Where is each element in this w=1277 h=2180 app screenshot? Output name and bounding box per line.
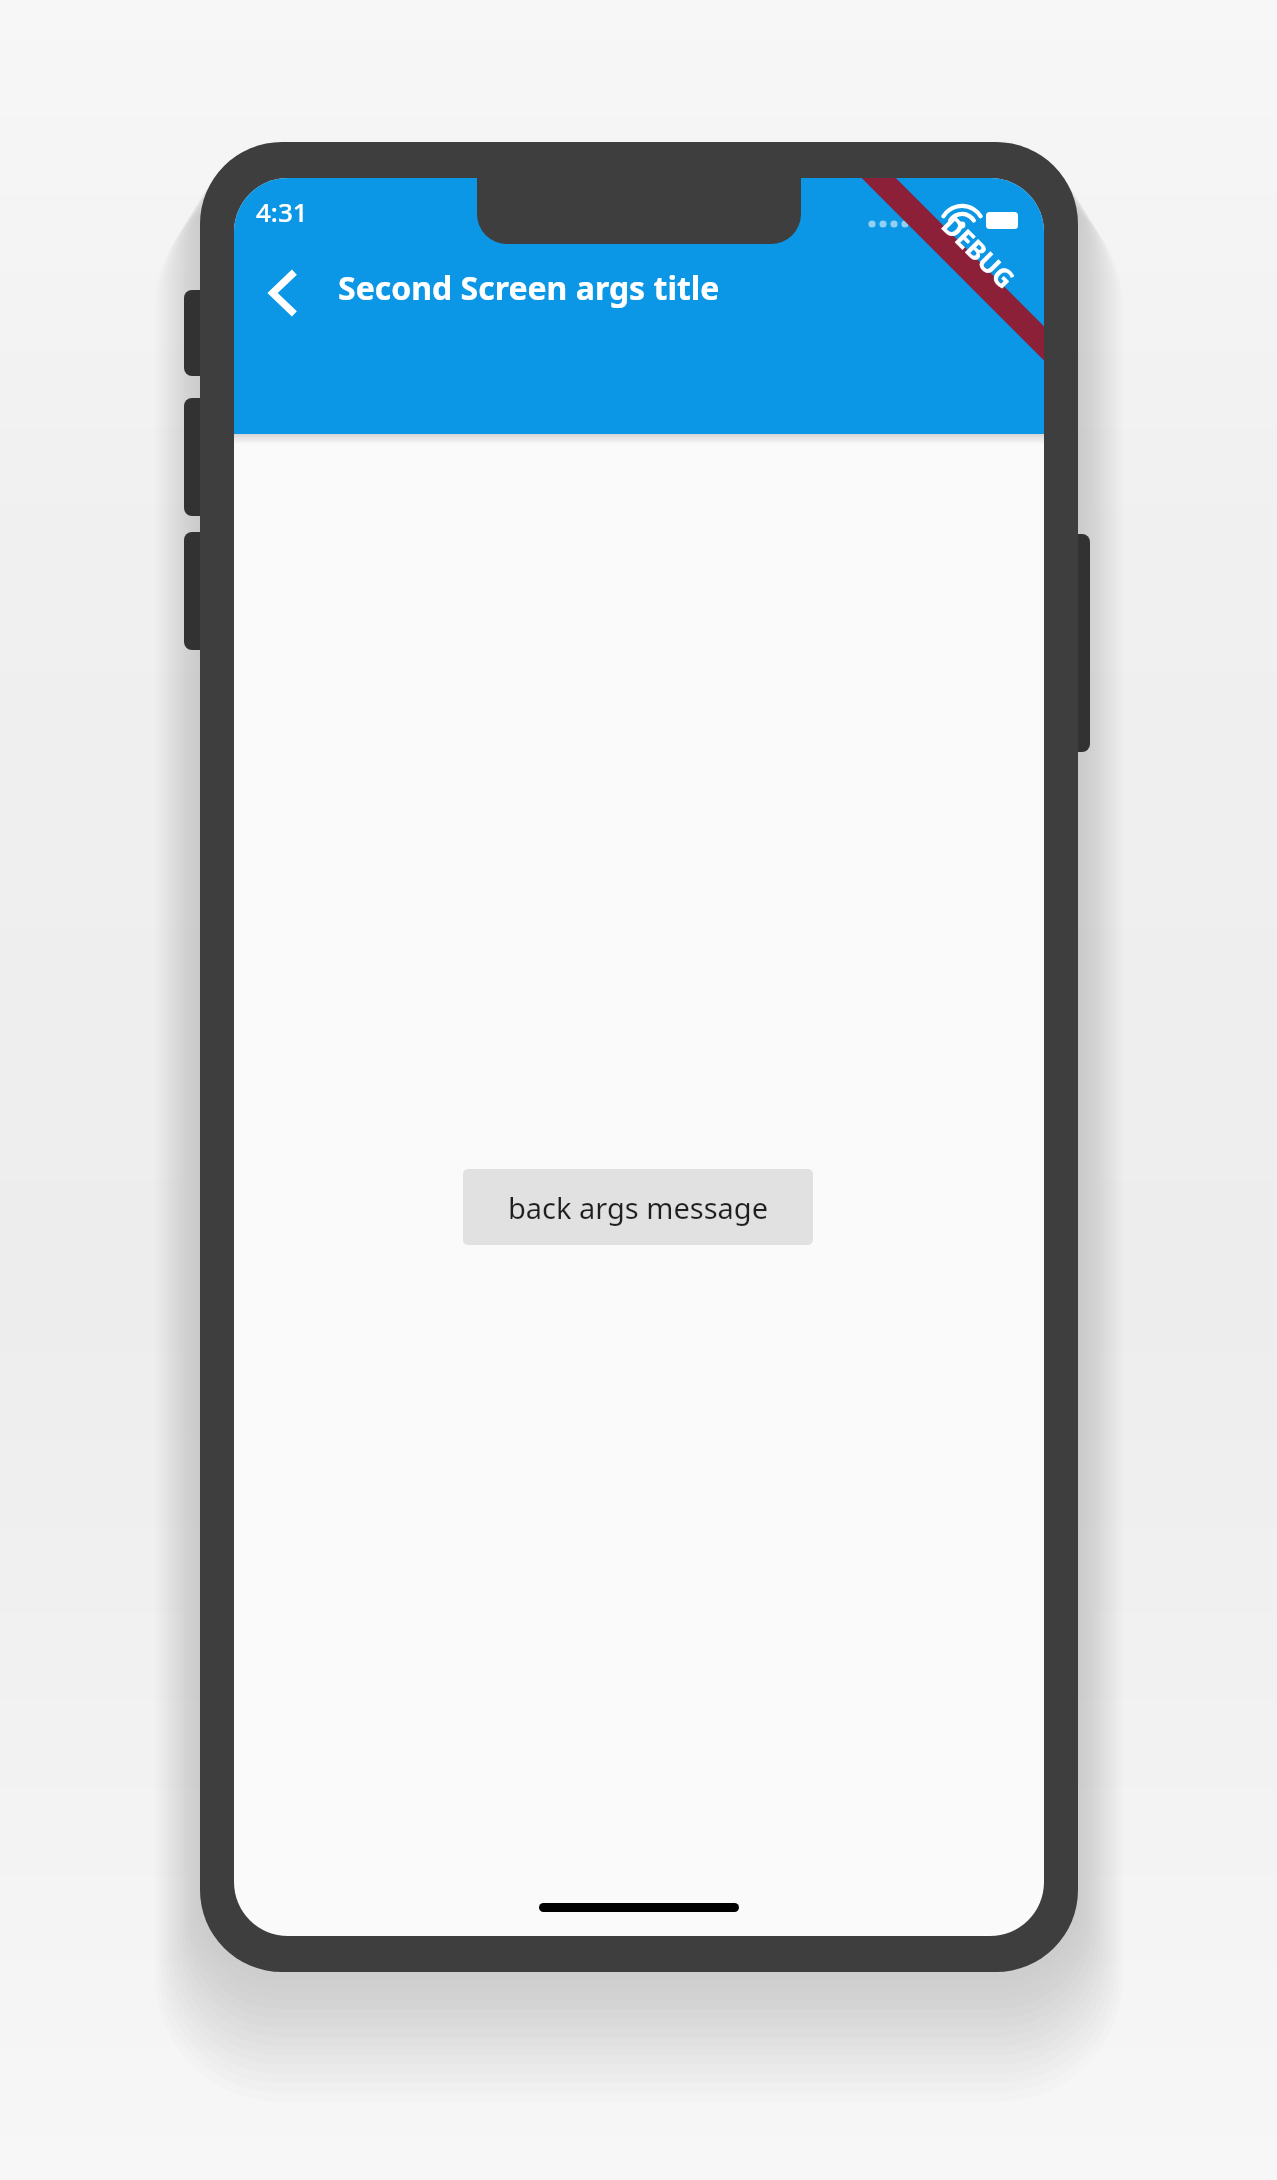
staticText: back args message (508, 1188, 768, 1227)
button[interactable]: Back (240, 250, 326, 336)
staticText: 4:31 (256, 194, 308, 229)
staticText: DEBUG (935, 207, 1023, 296)
button[interactable]: back args message (463, 1169, 813, 1245)
staticText: Second Screen args title (338, 266, 720, 310)
